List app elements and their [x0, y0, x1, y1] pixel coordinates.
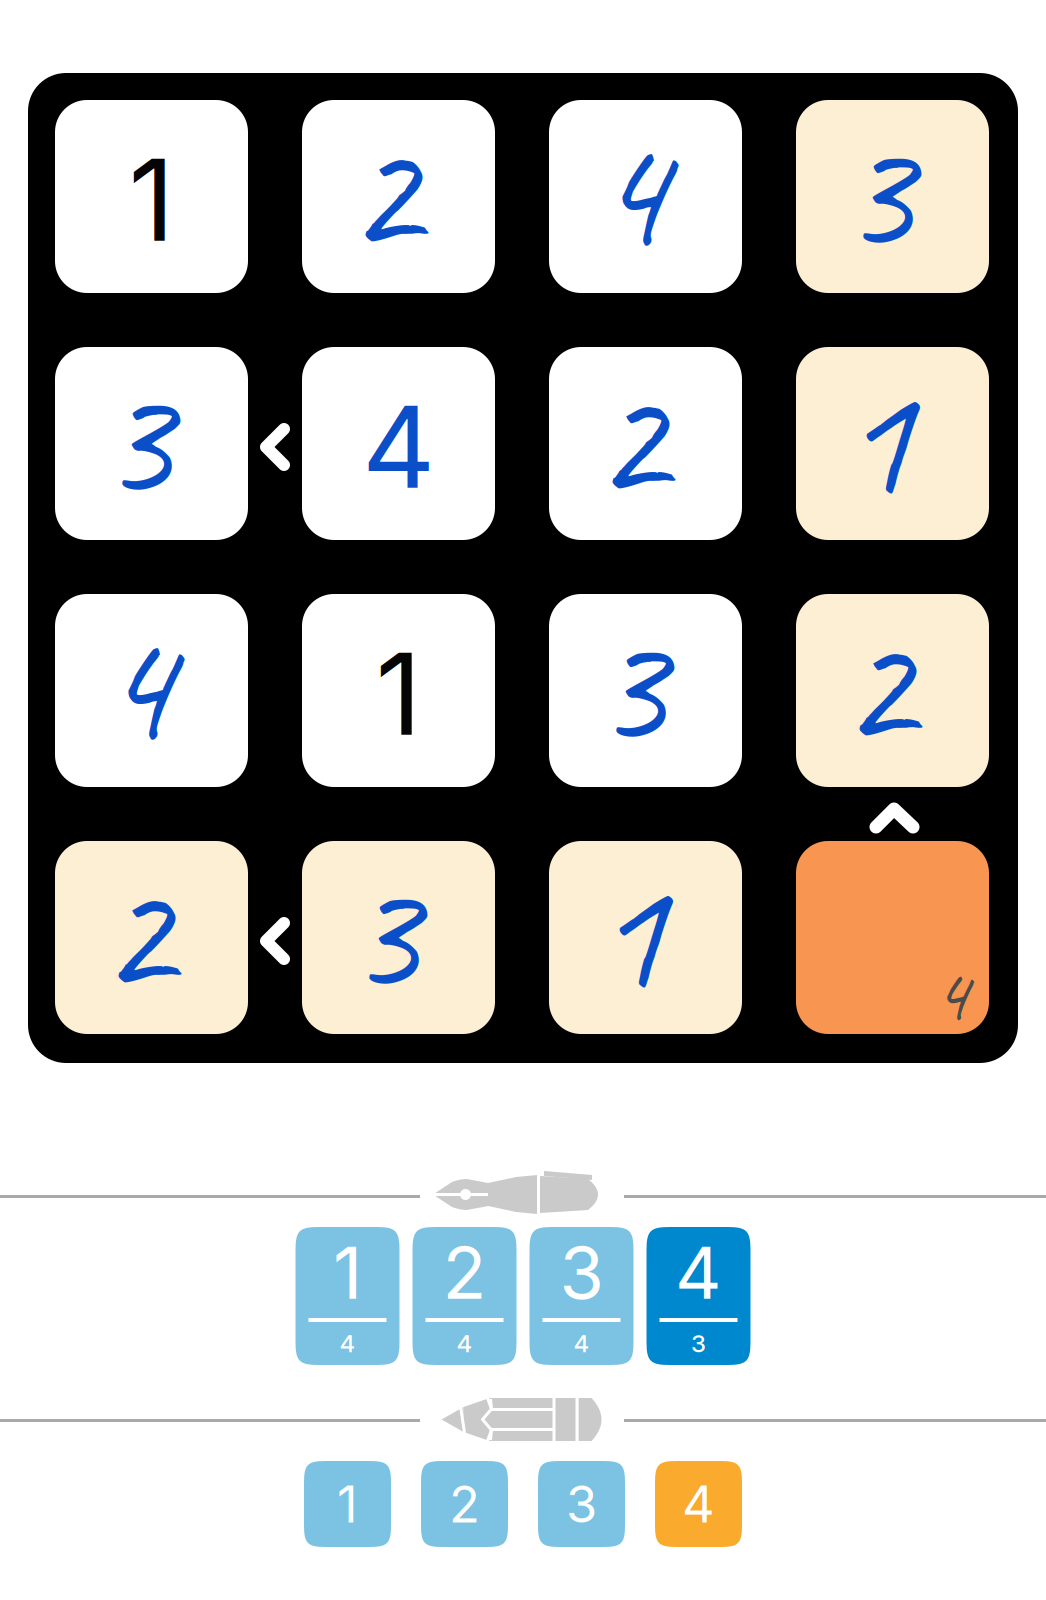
- staticText: 1: [593, 831, 666, 1034]
- button[interactable]: 2: [302, 100, 495, 293]
- button[interactable]: 1: [55, 100, 248, 293]
- staticText: 2: [442, 1229, 486, 1316]
- button[interactable]: 3: [529, 1227, 633, 1365]
- button[interactable]: 1: [796, 347, 989, 540]
- staticText: 4: [682, 1473, 715, 1535]
- staticText: 4: [99, 584, 172, 787]
- staticText: 2: [593, 337, 666, 540]
- staticText: 4: [675, 1229, 722, 1316]
- button[interactable]: 3: [529, 1461, 633, 1547]
- staticText: 3: [346, 831, 419, 1034]
- staticText: 3: [566, 1473, 597, 1535]
- button[interactable]: 2: [796, 594, 989, 787]
- button[interactable]: 4: [796, 841, 989, 1034]
- button[interactable]: 1: [295, 1227, 399, 1365]
- button[interactable]: 2: [55, 841, 248, 1034]
- button[interactable]: 1: [549, 841, 742, 1034]
- button[interactable]: 3: [549, 594, 742, 787]
- staticText: 4: [933, 946, 968, 1043]
- staticText: 4: [573, 1329, 589, 1358]
- button[interactable]: 3: [55, 347, 248, 540]
- button[interactable]: 4: [302, 347, 495, 540]
- button[interactable]: 3: [796, 100, 989, 293]
- staticText: 1: [840, 337, 913, 540]
- button[interactable]: 4: [55, 594, 248, 787]
- button[interactable]: 1: [302, 594, 495, 787]
- staticText: 1: [375, 625, 421, 762]
- staticText: 1: [337, 1473, 358, 1535]
- staticText: 2: [840, 584, 913, 787]
- button[interactable]: 1: [295, 1461, 399, 1547]
- button[interactable]: 4: [646, 1461, 750, 1547]
- staticText: 2: [346, 90, 419, 293]
- staticText: 4: [362, 378, 435, 515]
- button[interactable]: 2: [412, 1461, 516, 1547]
- button[interactable]: 4: [646, 1227, 750, 1365]
- button[interactable]: 4: [549, 100, 742, 293]
- staticText: 3: [559, 1229, 603, 1316]
- staticText: 4: [456, 1329, 472, 1358]
- staticText: 1: [333, 1229, 362, 1316]
- staticText: 2: [449, 1473, 480, 1535]
- button[interactable]: 2: [412, 1227, 516, 1365]
- button[interactable]: 2: [549, 347, 742, 540]
- staticText: 4: [339, 1329, 355, 1358]
- staticText: 3: [840, 90, 913, 293]
- staticText: 3: [99, 337, 172, 540]
- staticText: 2: [99, 831, 172, 1034]
- staticText: 3: [593, 584, 666, 787]
- staticText: 1: [128, 131, 174, 268]
- staticText: 3: [691, 1329, 706, 1358]
- button[interactable]: 3: [302, 841, 495, 1034]
- staticText: 4: [593, 90, 666, 293]
